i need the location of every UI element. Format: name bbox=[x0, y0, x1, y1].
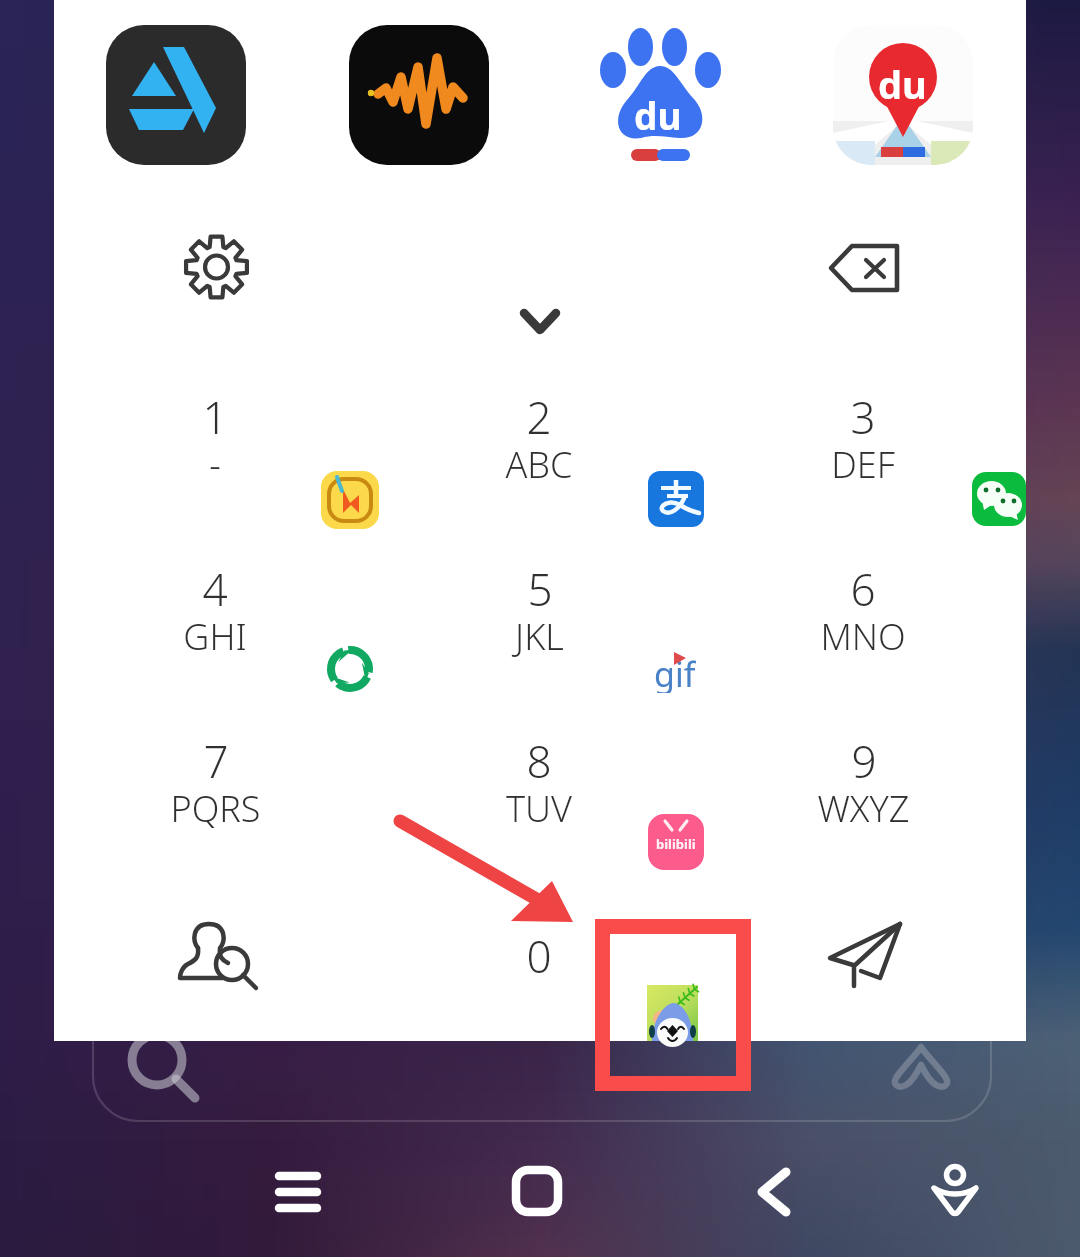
button[interactable]: Ctrip bbox=[326, 645, 374, 693]
staticText: - bbox=[209, 440, 221, 489]
button[interactable]: Baidu bbox=[600, 26, 722, 174]
button[interactable]: Bilibili bbox=[648, 814, 704, 870]
button[interactable]: Home bbox=[482, 1136, 592, 1246]
staticText: 8 bbox=[526, 731, 552, 791]
staticText: bilibili bbox=[656, 835, 696, 853]
button[interactable]: Kuaishou bbox=[321, 471, 379, 529]
button[interactable]: 9 bbox=[773, 701, 953, 851]
button[interactable]: 0 bbox=[449, 896, 629, 1046]
button[interactable]: Baidu Maps bbox=[833, 25, 973, 165]
staticText: MNO bbox=[820, 612, 906, 661]
button[interactable]: WeChat bbox=[972, 472, 1026, 526]
staticText: 2 bbox=[526, 387, 552, 447]
button[interactable]: Affinity Designer bbox=[106, 25, 246, 165]
button[interactable]: 1 bbox=[125, 357, 305, 507]
button[interactable]: GIF bbox=[652, 649, 704, 691]
button[interactable]: Send message bbox=[828, 922, 906, 990]
button[interactable]: Settings bbox=[183, 234, 250, 300]
staticText: 1 bbox=[202, 387, 228, 447]
button[interactable]: 8 bbox=[449, 701, 629, 851]
button[interactable]: 3 bbox=[773, 357, 953, 507]
button[interactable]: Profile avatar bbox=[647, 985, 698, 1041]
staticText: du bbox=[878, 58, 927, 110]
staticText: PQRS bbox=[170, 784, 261, 833]
staticText: GHI bbox=[183, 612, 247, 661]
button[interactable]: Recent apps bbox=[243, 1137, 353, 1247]
staticText: 5 bbox=[527, 559, 553, 619]
button[interactable]: Search contacts bbox=[180, 918, 260, 992]
staticText: WXYZ bbox=[817, 784, 910, 833]
button[interactable]: Alipay bbox=[648, 471, 704, 527]
staticText: TUV bbox=[506, 784, 572, 833]
staticText: 9 bbox=[851, 731, 877, 791]
staticText: gif bbox=[654, 651, 696, 693]
button[interactable]: Assistant bbox=[900, 1138, 1010, 1248]
button[interactable]: 5 bbox=[449, 529, 629, 679]
button[interactable]: 6 bbox=[773, 529, 953, 679]
staticText: 4 bbox=[202, 559, 228, 619]
button[interactable]: 4 bbox=[125, 529, 305, 679]
staticText: 3 bbox=[850, 387, 876, 447]
button[interactable]: Collapse keypad bbox=[518, 308, 562, 338]
button[interactable]: Audio Recorder bbox=[349, 25, 489, 165]
staticText: 6 bbox=[850, 559, 876, 619]
staticText: 0 bbox=[526, 926, 552, 986]
staticText: DEF bbox=[831, 440, 895, 489]
staticText: 7 bbox=[203, 731, 229, 791]
button[interactable]: 2 bbox=[449, 357, 629, 507]
staticText: du bbox=[634, 90, 682, 140]
staticText: ABC bbox=[505, 440, 573, 489]
button[interactable]: Back bbox=[719, 1137, 829, 1247]
button[interactable]: 7 bbox=[125, 701, 305, 851]
staticText: JKL bbox=[515, 612, 564, 661]
button[interactable]: Backspace bbox=[828, 243, 900, 293]
